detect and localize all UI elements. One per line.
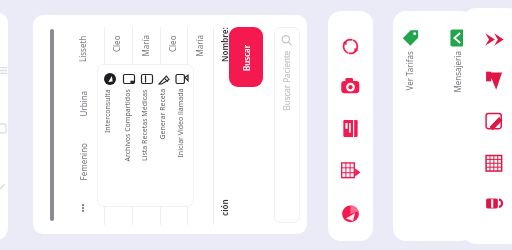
staticText: Generar Receta [157,88,167,139]
button[interactable]: Entrar [484,29,505,50]
staticText: Interconsulta [103,89,113,133]
button[interactable]: Salir [484,70,505,91]
staticText: ción [219,199,230,216]
staticText: Cleo [167,35,178,52]
button[interactable]: Mensajeria [449,29,471,149]
button[interactable]: Reportes [340,160,361,181]
staticText: Lisseth [77,35,88,62]
staticText: Femenino [77,142,88,180]
staticText: Buscar Paciente [280,50,291,110]
button[interactable]: Buscar [229,27,263,87]
button[interactable]: Archivos Compartidos [120,64,139,207]
button[interactable]: Ver Tarifas [401,29,423,149]
button[interactable]: Descanso [484,193,505,214]
button[interactable]: Agenda [340,118,361,139]
button[interactable]: Calculadora [484,153,505,174]
button[interactable]: Iniciar Video llamada [173,64,192,207]
button[interactable]: Editar [484,111,505,132]
staticText: Cleo [111,35,122,52]
button[interactable]: Cámara [340,76,361,97]
staticText: Urbina [77,90,88,116]
button[interactable]: Más opciones [78,203,88,213]
button[interactable]: Estadísticas [340,203,361,224]
button[interactable]: Buscar Paciente [274,27,300,223]
staticText: Ver Tarifas [403,50,414,90]
staticText: María [193,34,204,56]
staticText: Mensajeria [451,50,462,92]
staticText: Nombre: [219,27,230,62]
button[interactable]: Actualizar [340,36,361,57]
button[interactable]: Generar Receta [155,64,174,207]
button[interactable]: Lista Recetas Médicas [138,64,157,207]
button[interactable]: Interconsulta [101,64,120,207]
staticText: Buscar [241,44,252,71]
staticText: Lista Recetas Médicas [140,89,150,161]
staticText: María [139,34,150,56]
staticText: Archivos Compartidos [122,88,132,161]
staticText: Iniciar Video llamada [175,88,185,157]
